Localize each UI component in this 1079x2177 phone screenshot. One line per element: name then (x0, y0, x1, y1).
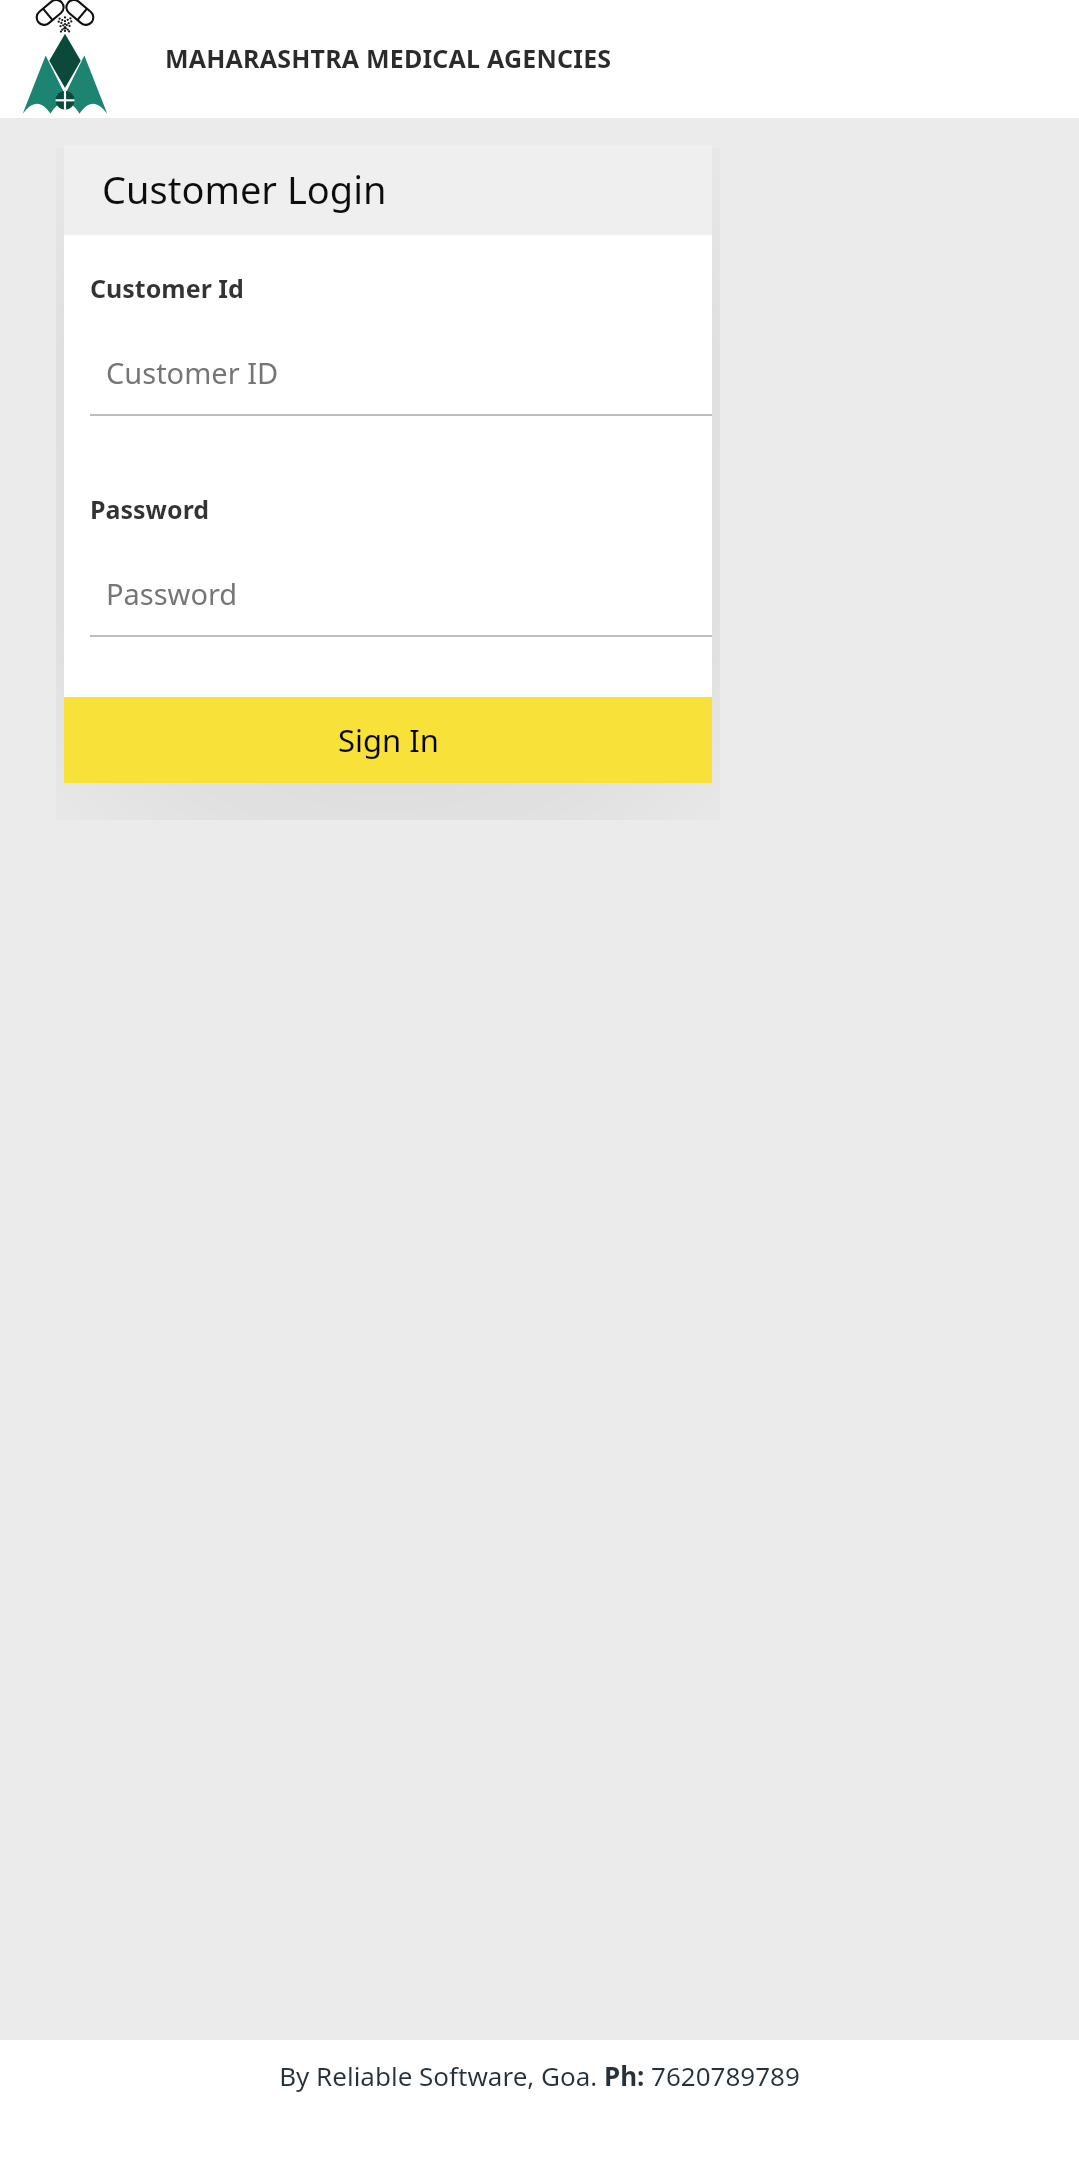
staticText: Customer Login (102, 163, 387, 215)
staticText: MAHARASHTRA MEDICAL AGENCIES (165, 41, 612, 75)
button[interactable]: Customer ID (64, 353, 712, 416)
button[interactable]: Password (64, 574, 712, 637)
other: Maharashtra Medical Agencies logo (20, 0, 110, 118)
staticText: Sign In (338, 719, 439, 761)
staticText: Password (90, 492, 210, 526)
staticText: By Reliable Software, Goa. Ph: 762078978… (0, 2058, 1079, 2093)
staticText: Customer Id (90, 271, 244, 305)
staticText: Customer ID (106, 353, 279, 392)
button[interactable]: Sign In (64, 697, 712, 783)
staticText: Password (106, 574, 238, 613)
